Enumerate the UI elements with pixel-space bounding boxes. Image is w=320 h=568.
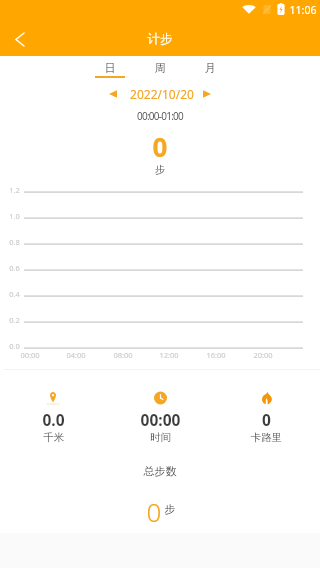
staticText: 20:00 xyxy=(247,350,279,360)
staticText: 步 xyxy=(158,502,182,516)
staticText: 0.2 xyxy=(6,315,23,325)
staticText: 04:00 xyxy=(60,350,92,360)
staticText: 0 xyxy=(213,409,320,430)
button[interactable]: 0 xyxy=(213,386,320,448)
button[interactable]: 日 xyxy=(90,58,130,82)
staticText: 00:00 xyxy=(107,409,214,430)
staticText: 11:06 xyxy=(288,3,318,17)
staticText: 0.8 xyxy=(6,237,23,247)
staticText: 月 xyxy=(190,61,230,75)
staticText: 周 xyxy=(140,61,180,75)
staticText: 16:00 xyxy=(200,350,232,360)
staticText: 1.2 xyxy=(6,185,23,195)
button[interactable]: 周 xyxy=(140,58,180,82)
staticText: 0 xyxy=(100,129,220,164)
staticText: 步 xyxy=(0,163,320,176)
staticText: 日 xyxy=(90,61,130,75)
staticText: 0.0 xyxy=(6,341,23,351)
staticText: 0 xyxy=(112,494,196,529)
staticText: 时间 xyxy=(107,431,214,444)
button[interactable]: 月 xyxy=(190,58,230,82)
button[interactable]: Previous day xyxy=(104,85,122,103)
staticText: 卡路里 xyxy=(213,431,320,444)
staticText: 00:00-01:00 xyxy=(0,109,320,123)
staticText: 0.6 xyxy=(6,263,23,273)
staticText: 1.0 xyxy=(6,211,23,221)
staticText: 2022/10/20 xyxy=(102,86,222,102)
staticText: 12:00 xyxy=(153,350,185,360)
button[interactable]: Next day xyxy=(198,85,216,103)
staticText: 0.0 xyxy=(0,409,107,430)
staticText: 千米 xyxy=(0,431,107,444)
button[interactable]: 0.0 xyxy=(0,386,107,448)
button[interactable]: 00:00 xyxy=(107,386,214,448)
staticText: 计步 xyxy=(0,31,320,47)
staticText: 08:00 xyxy=(107,350,139,360)
staticText: 0.4 xyxy=(6,289,23,299)
staticText: 总步数 xyxy=(0,464,320,478)
button[interactable]: Back xyxy=(0,21,40,58)
staticText: 00:00 xyxy=(14,350,46,360)
